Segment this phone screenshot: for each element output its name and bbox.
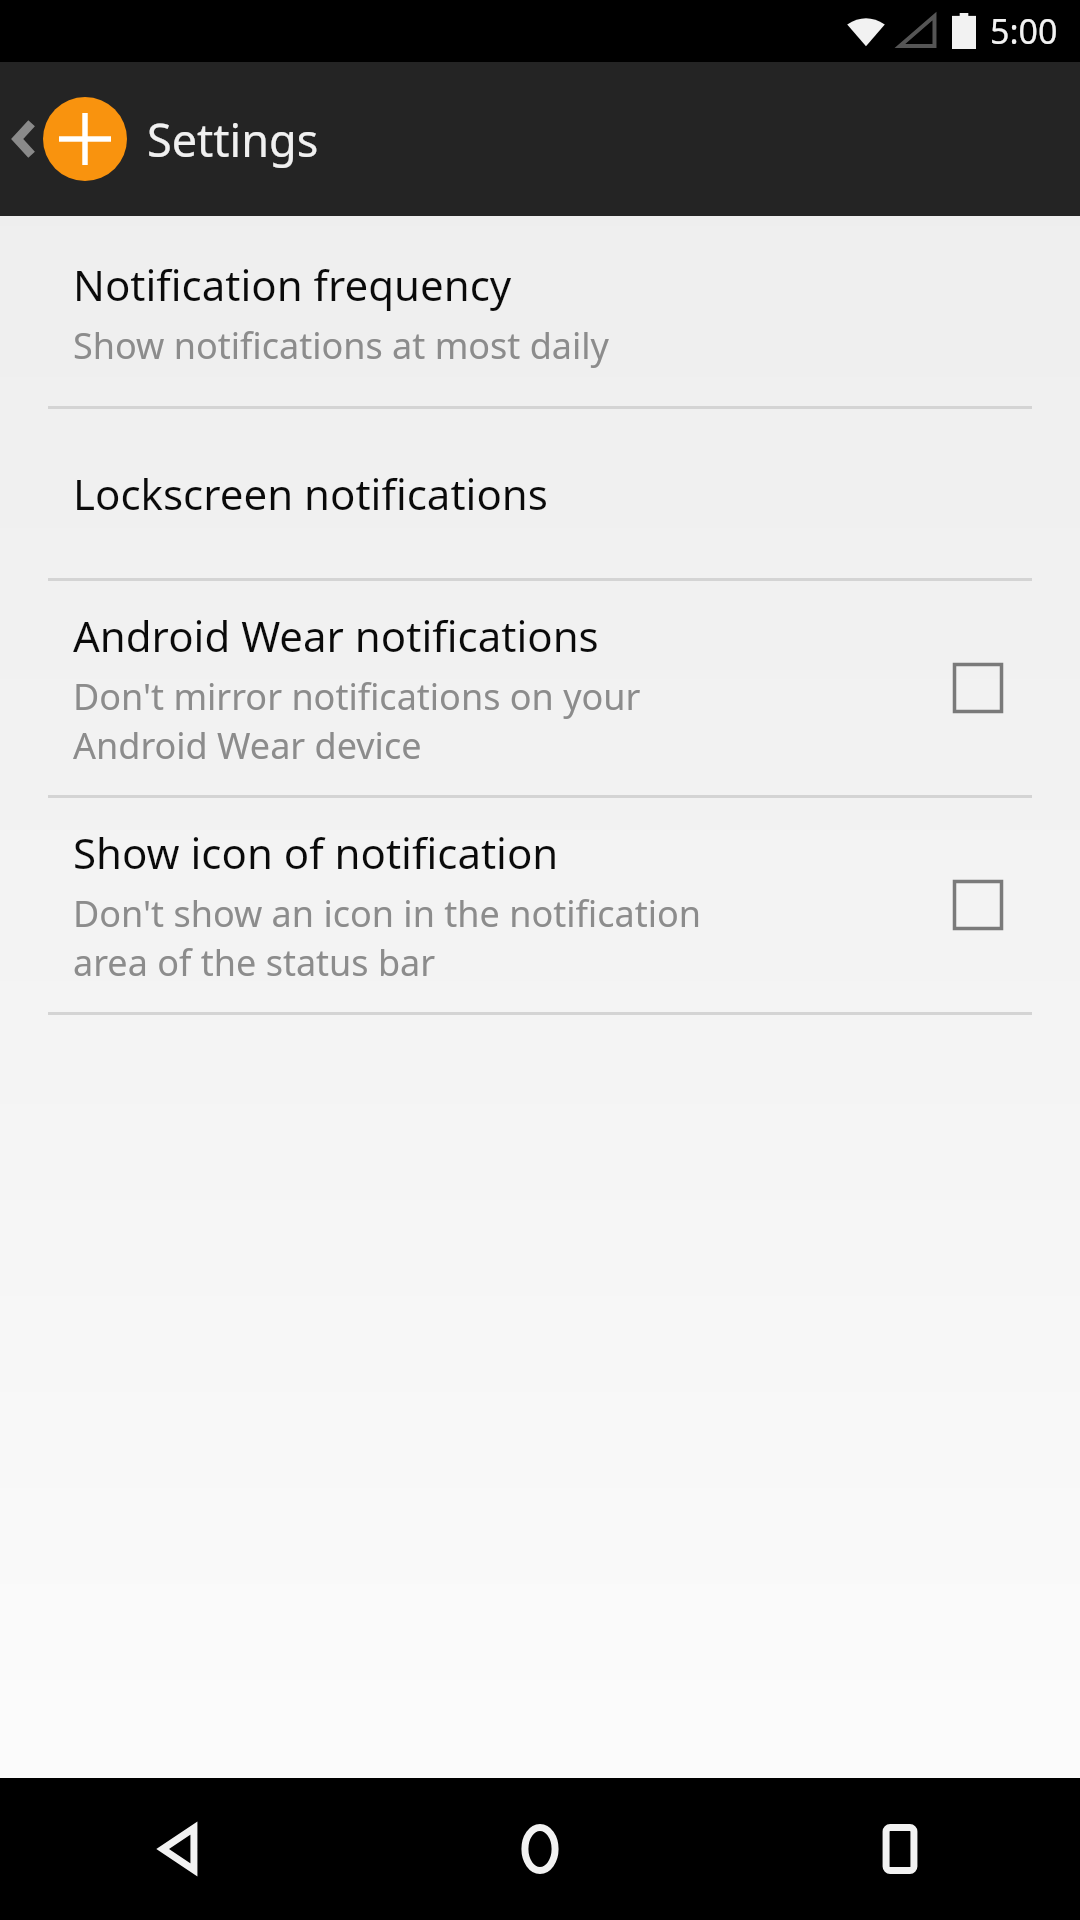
staticText: Show icon of notification — [73, 824, 559, 881]
button[interactable]: Recent apps — [720, 1778, 1080, 1920]
button[interactable]: Notification frequency — [0, 216, 1080, 406]
staticText: Notification frequency — [73, 256, 512, 313]
button[interactable]: Back — [0, 1778, 360, 1920]
staticText: Lockscreen notifications — [73, 465, 548, 522]
button[interactable]: Android Wear notifications — [0, 581, 1080, 795]
staticText: Android Wear notifications — [73, 607, 599, 664]
button[interactable]: Lockscreen notifications — [0, 409, 1080, 578]
staticText: Don't show an icon in the notification a… — [73, 889, 701, 986]
button[interactable]: Show icon of notification checkbox — [924, 851, 1032, 959]
button[interactable]: Show icon of notification — [0, 798, 1080, 1012]
staticText: Settings — [147, 109, 319, 170]
staticText: Don't mirror notifications on your Andro… — [73, 672, 641, 769]
button[interactable]: Navigate up, Settings — [0, 62, 1080, 216]
staticText: 5:00 — [990, 8, 1058, 54]
staticText: Show notifications at most daily — [73, 321, 609, 370]
button[interactable]: Home — [360, 1778, 720, 1920]
button[interactable]: Android Wear notifications checkbox — [924, 634, 1032, 742]
